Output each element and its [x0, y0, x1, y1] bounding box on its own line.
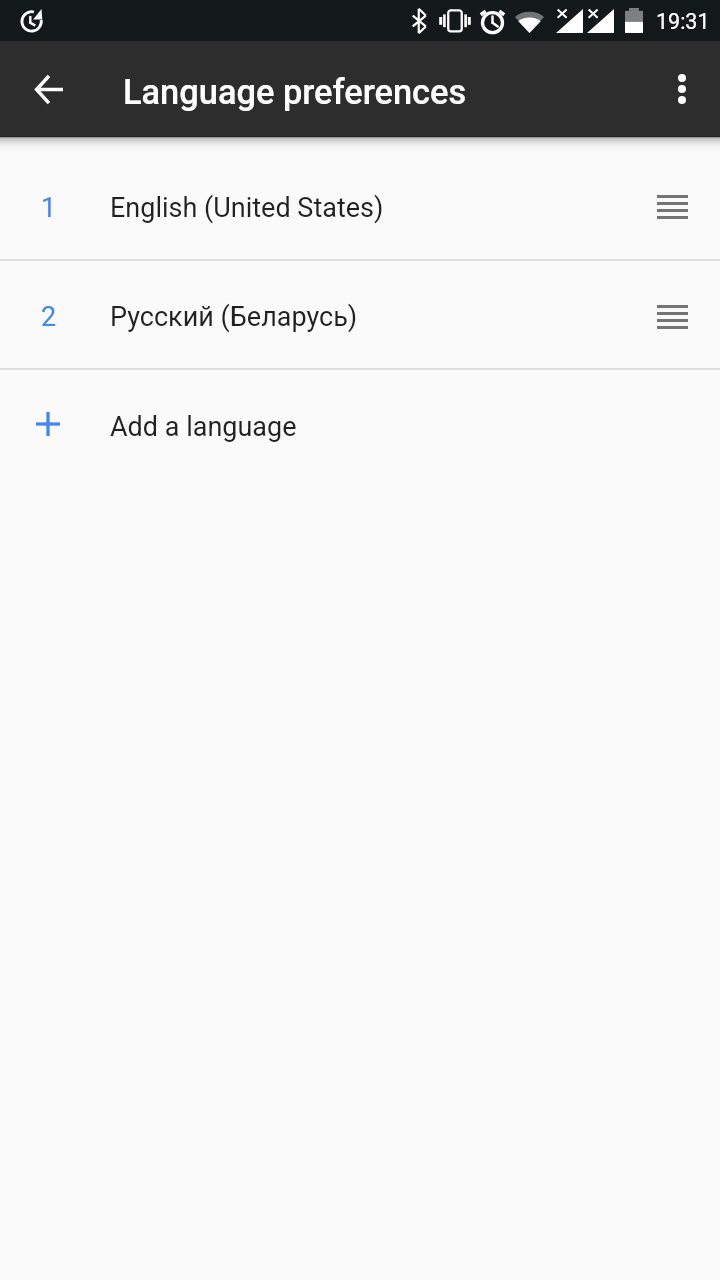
staticText: 19:31 — [656, 9, 710, 34]
button[interactable]: Navigate up — [17, 57, 81, 121]
button[interactable]: Reorder — [641, 179, 704, 235]
button[interactable]: Add a language — [0, 371, 720, 480]
staticText: 2 — [41, 301, 57, 333]
staticText: Language preferences — [123, 72, 467, 112]
staticText: Add a language — [110, 411, 297, 443]
button[interactable]: Reorder — [641, 289, 704, 345]
button[interactable]: 2 — [0, 262, 720, 368]
button[interactable]: More options — [650, 57, 714, 121]
staticText: Русский (Беларусь) — [110, 301, 358, 333]
button[interactable]: 1 — [0, 152, 720, 259]
staticText: 1 — [41, 192, 57, 224]
staticText: English (United States) — [110, 192, 384, 224]
